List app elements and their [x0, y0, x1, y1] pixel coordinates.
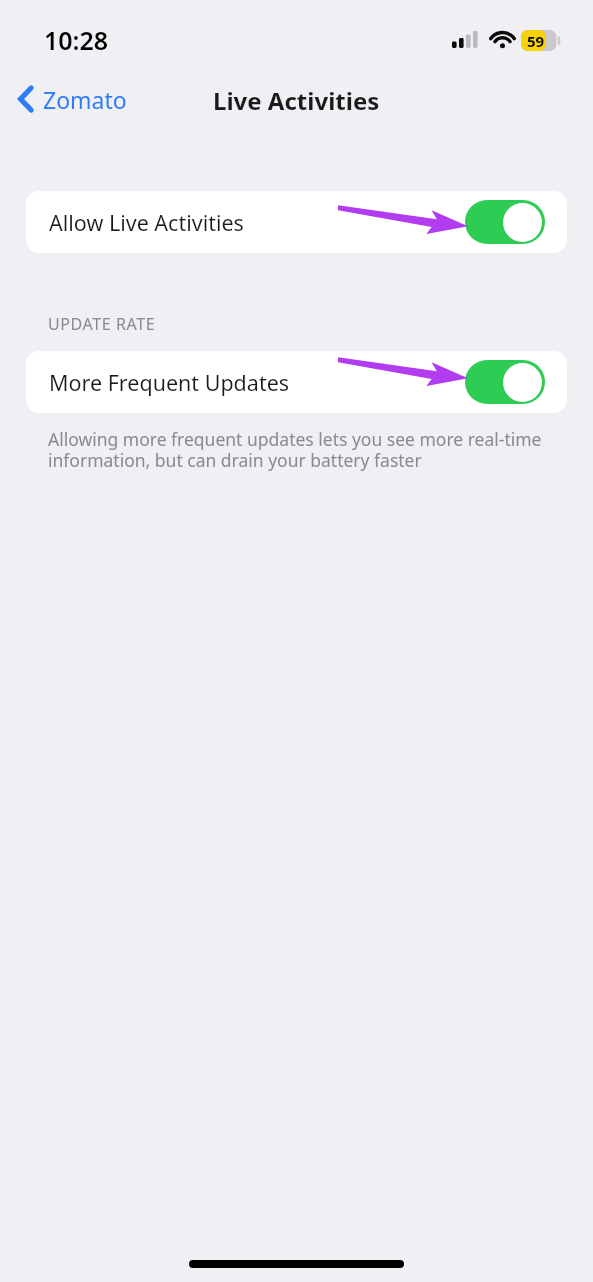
button[interactable]: Zomato — [10, 70, 135, 128]
button[interactable]: Toggle on — [465, 200, 545, 244]
staticText: Live Activities — [213, 84, 380, 117]
button[interactable]: More Frequent Updates — [26, 351, 567, 413]
staticText: More Frequent Updates — [49, 368, 290, 397]
staticText: Allowing more frequent updates lets you … — [48, 427, 549, 472]
staticText: Allow Live Activities — [49, 208, 244, 237]
staticText: 59 — [527, 31, 545, 51]
staticText: UPDATE RATE — [48, 313, 156, 335]
button[interactable]: Allow Live Activities — [26, 191, 567, 253]
staticText: Zomato — [43, 84, 127, 115]
staticText: 10:28 — [44, 23, 109, 57]
button[interactable]: Toggle on — [465, 360, 545, 404]
